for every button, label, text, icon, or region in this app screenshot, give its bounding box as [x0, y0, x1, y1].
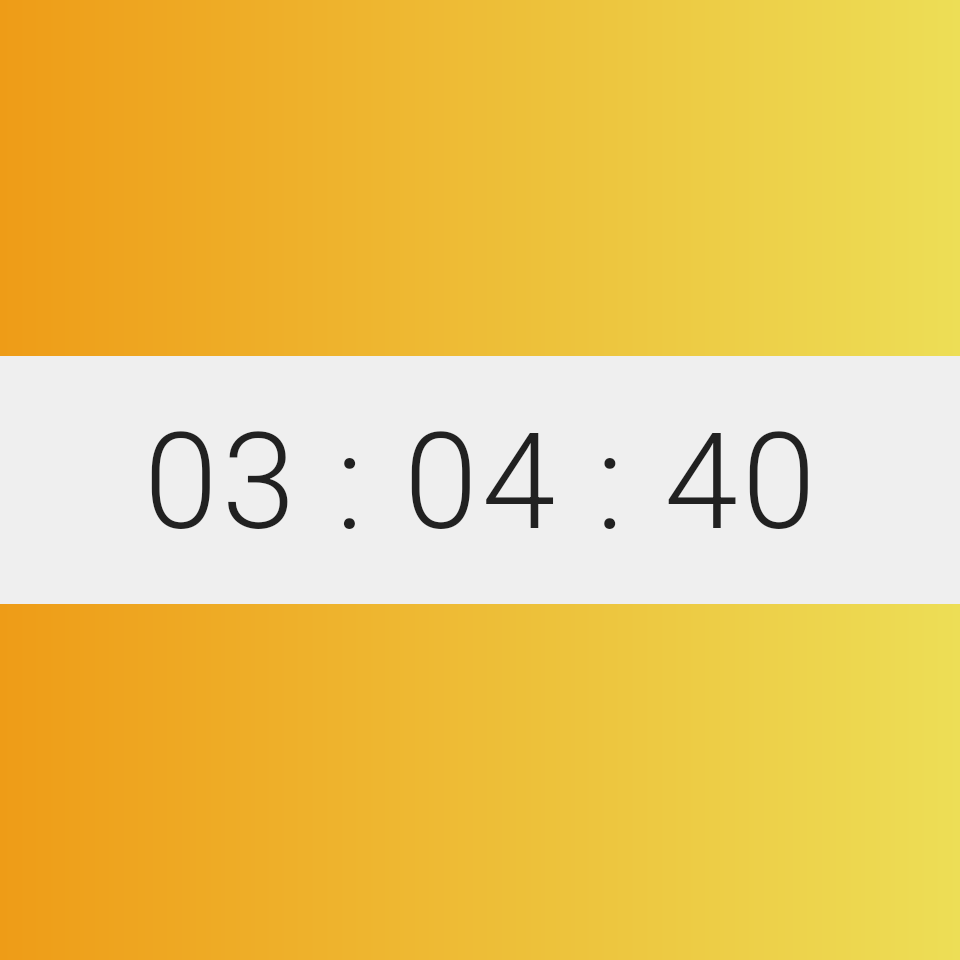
- button[interactable]: Timer 03 : 04 : 40, tap to start or paus…: [0, 356, 960, 604]
